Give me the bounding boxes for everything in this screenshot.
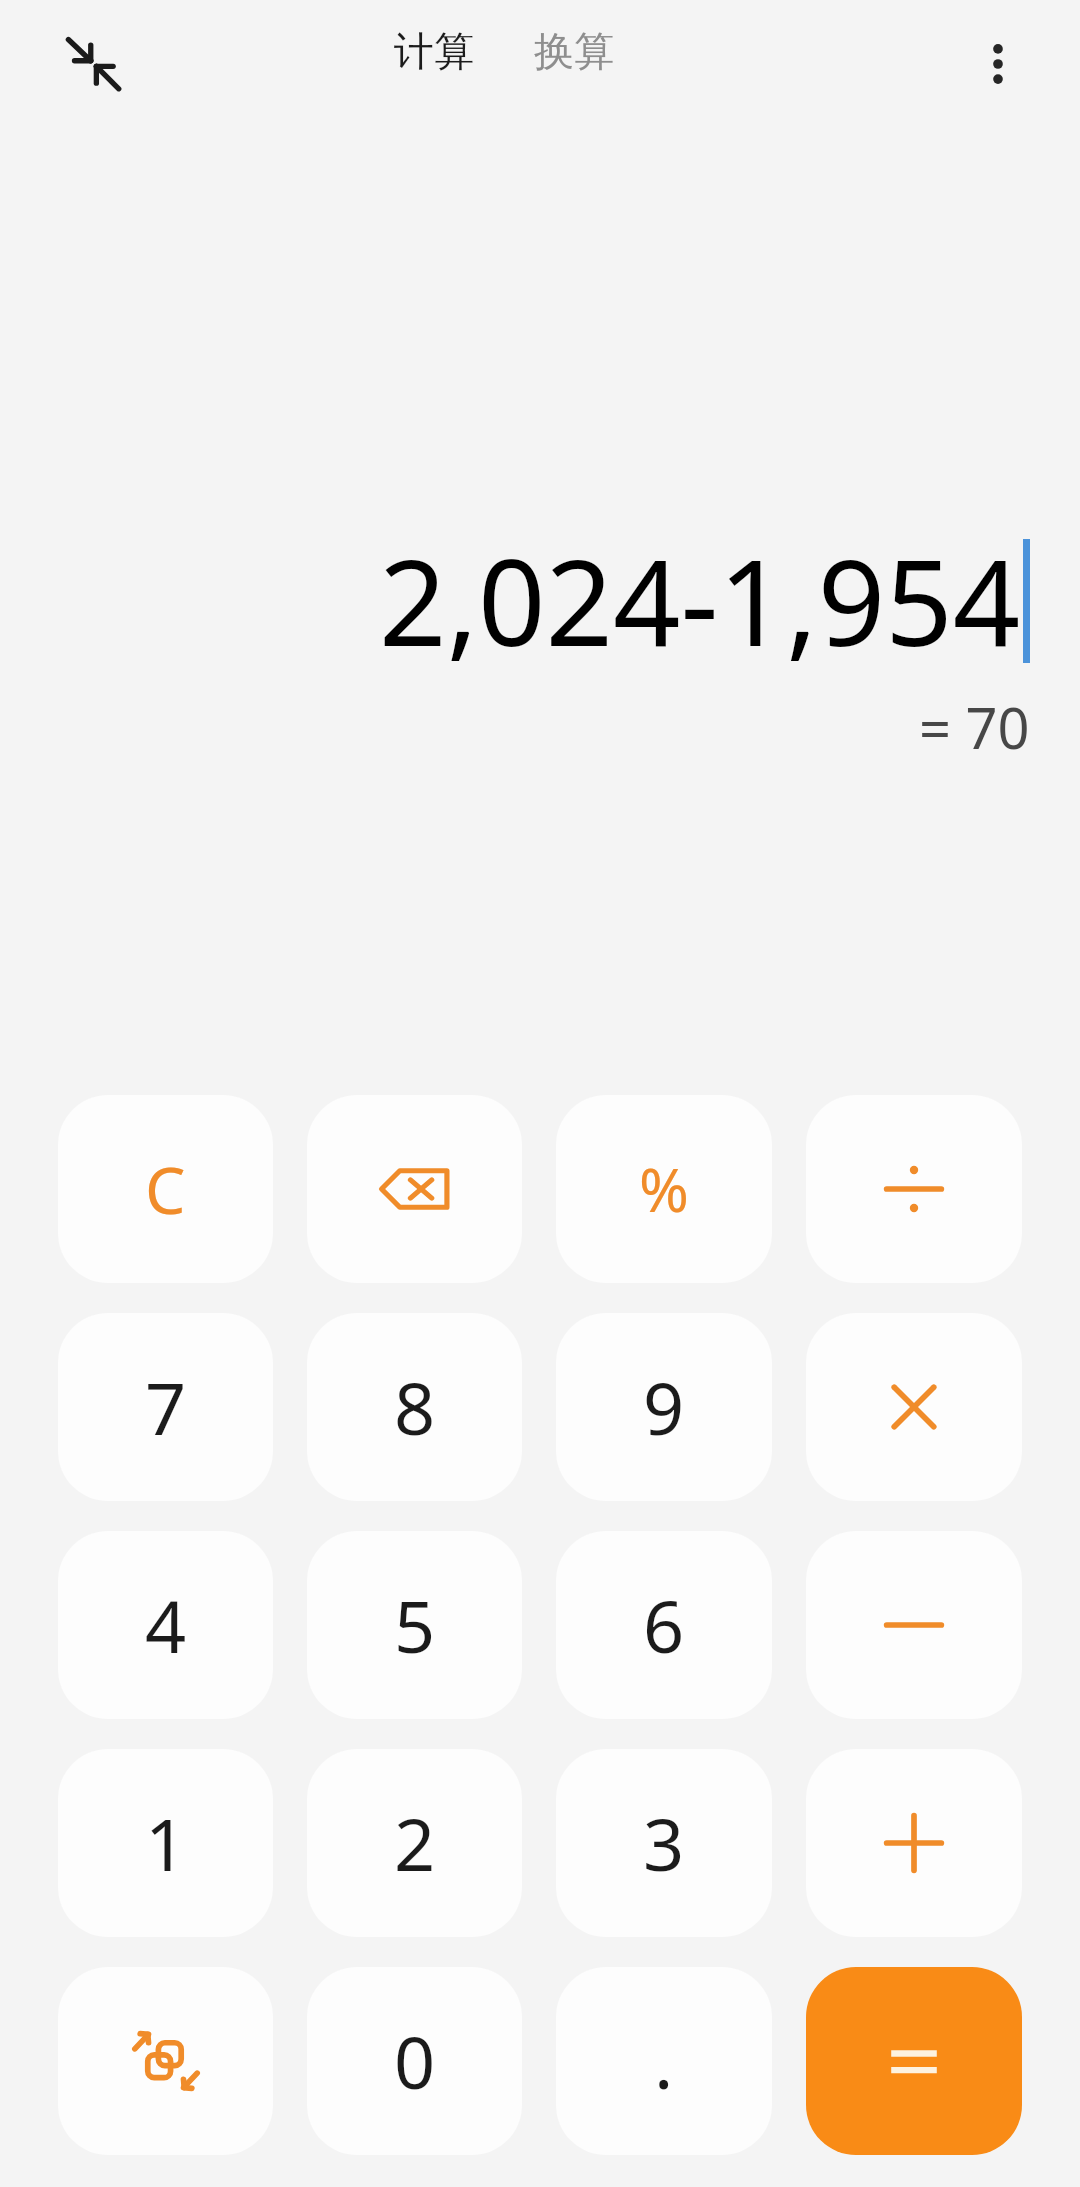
button[interactable]: 1: [58, 1749, 273, 1937]
button[interactable]: .: [556, 1967, 772, 2155]
staticText: 8: [394, 1358, 436, 1456]
staticText: 4: [145, 1576, 187, 1674]
button[interactable]: Collapse: [46, 16, 140, 110]
staticText: C: [145, 1146, 186, 1233]
staticText: 5: [394, 1576, 436, 1674]
button[interactable]: 换算: [528, 20, 620, 82]
button[interactable]: C: [58, 1095, 273, 1283]
staticText: 9: [643, 1358, 685, 1456]
button[interactable]: 8: [307, 1313, 522, 1501]
button[interactable]: 5: [307, 1531, 522, 1719]
button[interactable]: 3: [556, 1749, 772, 1937]
button[interactable]: Plus: [806, 1749, 1022, 1937]
button[interactable]: Equals: [806, 1967, 1022, 2155]
staticText: 3: [643, 1794, 685, 1892]
button[interactable]: 计算: [388, 20, 480, 82]
staticText: 0: [394, 2012, 436, 2110]
button[interactable]: Minus: [806, 1531, 1022, 1719]
staticText: 6: [643, 1576, 685, 1674]
button[interactable]: 4: [58, 1531, 273, 1719]
staticText: .: [654, 2012, 674, 2110]
staticText: 7: [145, 1358, 187, 1456]
staticText: 计算: [394, 26, 474, 76]
button[interactable]: %: [556, 1095, 772, 1283]
button[interactable]: Convert units: [58, 1967, 273, 2155]
button[interactable]: More options: [950, 16, 1046, 112]
button[interactable]: 7: [58, 1313, 273, 1501]
button[interactable]: Divide: [806, 1095, 1022, 1283]
button[interactable]: 9: [556, 1313, 772, 1501]
button[interactable]: 0: [307, 1967, 522, 2155]
staticText: = 70: [919, 689, 1030, 765]
button[interactable]: Multiply: [806, 1313, 1022, 1501]
button[interactable]: 2: [307, 1749, 522, 1937]
staticText: 1: [145, 1794, 187, 1892]
staticText: %: [639, 1148, 689, 1230]
button[interactable]: 6: [556, 1531, 772, 1719]
button[interactable]: Backspace: [307, 1095, 522, 1283]
staticText: 2: [394, 1794, 436, 1892]
staticText: 换算: [534, 26, 614, 76]
staticText: 2,024-1,954: [379, 520, 1021, 681]
